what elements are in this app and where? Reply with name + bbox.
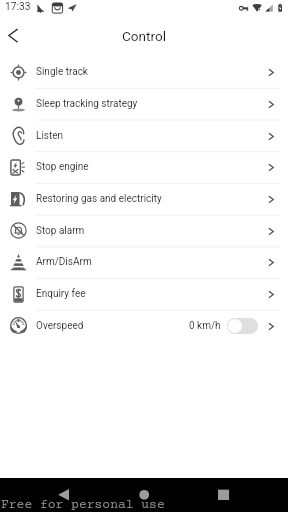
button[interactable]: Listen	[0, 120, 288, 151]
staticText: Stop engine	[36, 161, 89, 173]
button[interactable]: Stop alarm	[0, 215, 288, 246]
button[interactable]: Arm/DisArm	[0, 246, 288, 278]
button[interactable]: Back	[0, 478, 96, 512]
staticText: Listen	[36, 130, 64, 142]
button[interactable]: Stop engine	[0, 151, 288, 183]
staticText: Stop alarm	[36, 225, 85, 237]
staticText: Sleep tracking strategy	[36, 98, 138, 110]
button[interactable]: Overspeed	[0, 310, 288, 341]
button[interactable]: Sleep tracking strategy	[0, 88, 288, 120]
staticText: Enquiry fee	[36, 288, 86, 300]
button[interactable]: Overspeed toggle	[227, 318, 258, 334]
staticText: Overspeed	[36, 320, 84, 332]
staticText: Restoring gas and electricity	[36, 193, 162, 205]
button[interactable]: Single track	[0, 56, 288, 88]
staticText: 17:33	[5, 1, 31, 13]
staticText: Control	[122, 28, 167, 44]
staticText: 0 km/h	[189, 320, 221, 332]
staticText: Arm/DisArm	[36, 256, 92, 268]
button[interactable]: Recent apps	[192, 478, 288, 512]
button[interactable]: Enquiry fee	[0, 278, 288, 310]
button[interactable]: Restoring gas and electricity	[0, 183, 288, 215]
button[interactable]: Back	[0, 22, 30, 56]
button[interactable]: Home	[96, 478, 192, 512]
staticText: Single track	[36, 66, 88, 78]
staticText: Free for personal use	[1, 498, 165, 512]
